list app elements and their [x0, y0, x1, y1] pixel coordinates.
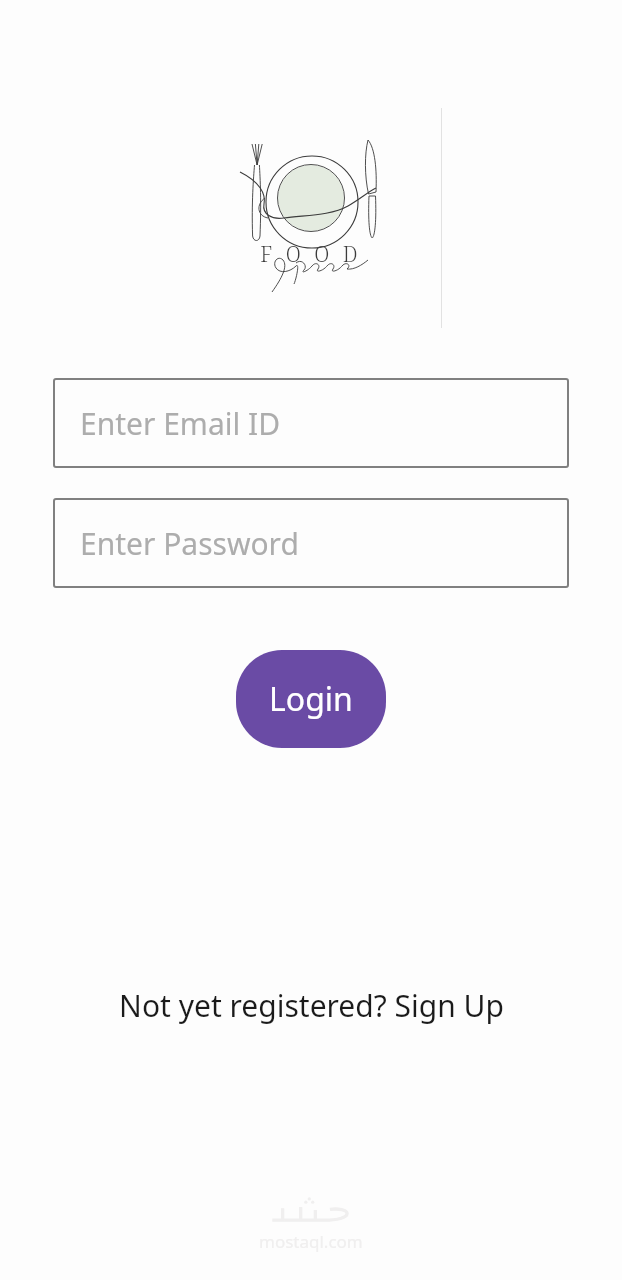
staticText: F O O D — [260, 240, 362, 269]
staticText: Enter Email ID — [80, 403, 281, 444]
other: Food Space logo — [226, 132, 396, 304]
staticText: Enter Password — [80, 523, 299, 564]
staticText: Not yet registered? Sign Up — [119, 985, 504, 1026]
staticText: mostaql.com — [259, 1230, 363, 1253]
staticText: Login — [269, 677, 353, 721]
button[interactable]: Login — [236, 650, 386, 748]
button[interactable]: Enter Email ID — [53, 378, 569, 468]
button[interactable]: Enter Password — [53, 498, 569, 588]
button[interactable]: Not yet registered? Sign Up — [0, 982, 622, 1028]
